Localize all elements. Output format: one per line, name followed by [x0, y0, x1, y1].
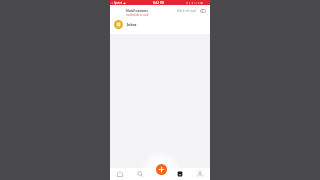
button[interactable]: Notifications [170, 168, 190, 180]
button[interactable]: Inbox [114, 18, 210, 30]
staticText: Sprint [114, 1, 122, 5]
button[interactable]: Home [110, 168, 130, 180]
staticText: Inbox [127, 22, 137, 26]
button[interactable]: Profile [190, 168, 210, 180]
button[interactable]: Settings [200, 8, 206, 14]
button[interactable]: Mark all read [177, 9, 197, 13]
staticText: marked all as read [126, 13, 149, 17]
staticText: Notifications [126, 8, 148, 13]
button[interactable]: Create post [156, 164, 167, 175]
staticText: 8:42 PM [153, 1, 165, 5]
button[interactable]: Search [130, 168, 150, 180]
